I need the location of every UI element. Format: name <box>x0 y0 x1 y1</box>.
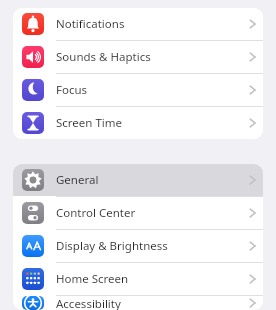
button[interactable]: Home Screen <box>13 263 263 295</box>
staticText: Display & Brightness <box>56 238 249 254</box>
button[interactable]: Accessibility <box>13 296 263 310</box>
button[interactable]: General <box>13 164 263 196</box>
button[interactable]: Control Center <box>13 197 263 229</box>
staticText: Accessibility <box>56 296 249 310</box>
staticText: Focus <box>56 82 249 98</box>
button[interactable]: Screen Time <box>13 107 263 139</box>
button[interactable]: Notifications <box>13 8 263 40</box>
staticText: Sounds & Haptics <box>56 49 249 65</box>
button[interactable]: Focus <box>13 74 263 106</box>
button[interactable]: Display & Brightness <box>13 230 263 262</box>
staticText: Screen Time <box>56 115 249 131</box>
button[interactable]: Sounds & Haptics <box>13 41 263 73</box>
staticText: Control Center <box>56 205 249 221</box>
staticText: Home Screen <box>56 271 249 287</box>
staticText: General <box>56 172 249 188</box>
staticText: Notifications <box>56 16 249 32</box>
